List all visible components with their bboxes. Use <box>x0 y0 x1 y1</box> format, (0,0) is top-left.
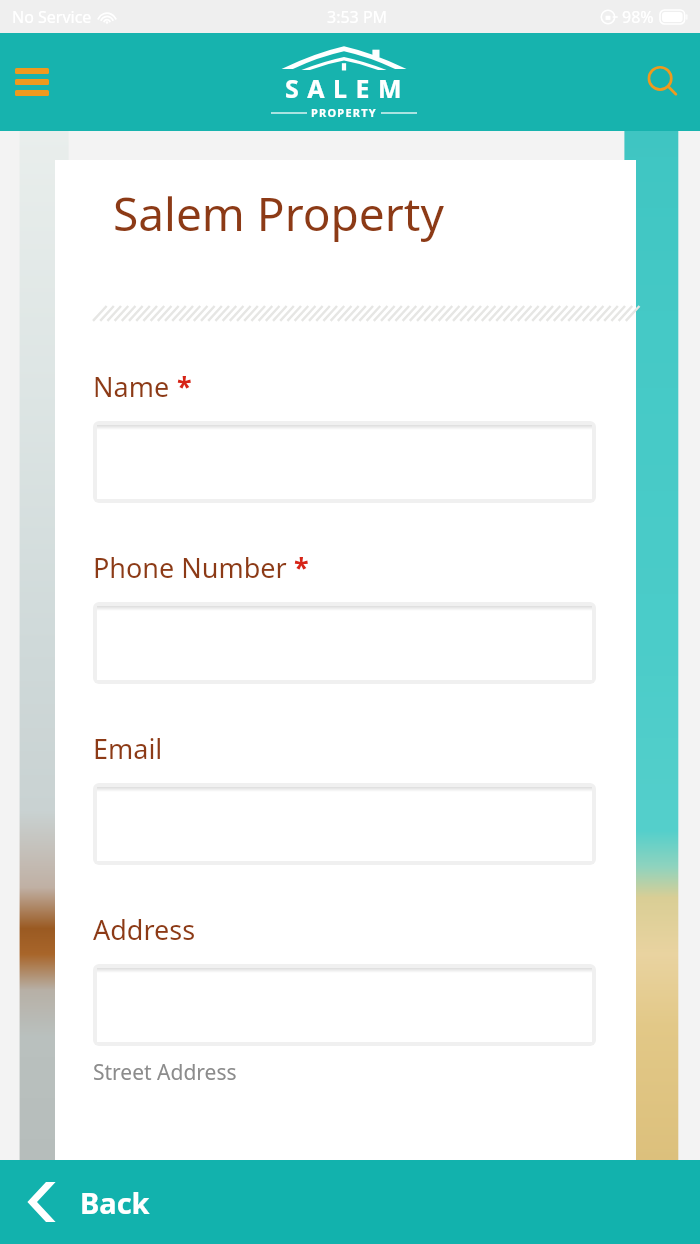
staticText: PROPERTY <box>311 105 377 120</box>
button[interactable] <box>97 787 592 861</box>
staticText: 98% <box>622 6 654 28</box>
staticText: Name <box>93 368 170 405</box>
button[interactable] <box>97 425 592 499</box>
staticText: Address <box>93 911 196 948</box>
staticText: Phone Number <box>93 549 287 586</box>
button[interactable]: Search <box>636 55 690 109</box>
staticText: Salem Property <box>113 182 636 245</box>
staticText: * <box>177 368 192 405</box>
staticText: 3:53 PM <box>327 6 388 28</box>
staticText: S A L E M <box>285 71 403 105</box>
staticText: Back <box>80 1183 150 1222</box>
staticText: * <box>294 549 309 586</box>
button[interactable] <box>97 606 592 680</box>
staticText: No Service <box>12 6 92 28</box>
staticText: Street Address <box>93 1058 237 1087</box>
button[interactable] <box>97 968 592 1042</box>
button[interactable]: Back <box>0 1160 700 1244</box>
staticText: Email <box>93 730 163 767</box>
button[interactable]: Menu <box>6 56 58 108</box>
